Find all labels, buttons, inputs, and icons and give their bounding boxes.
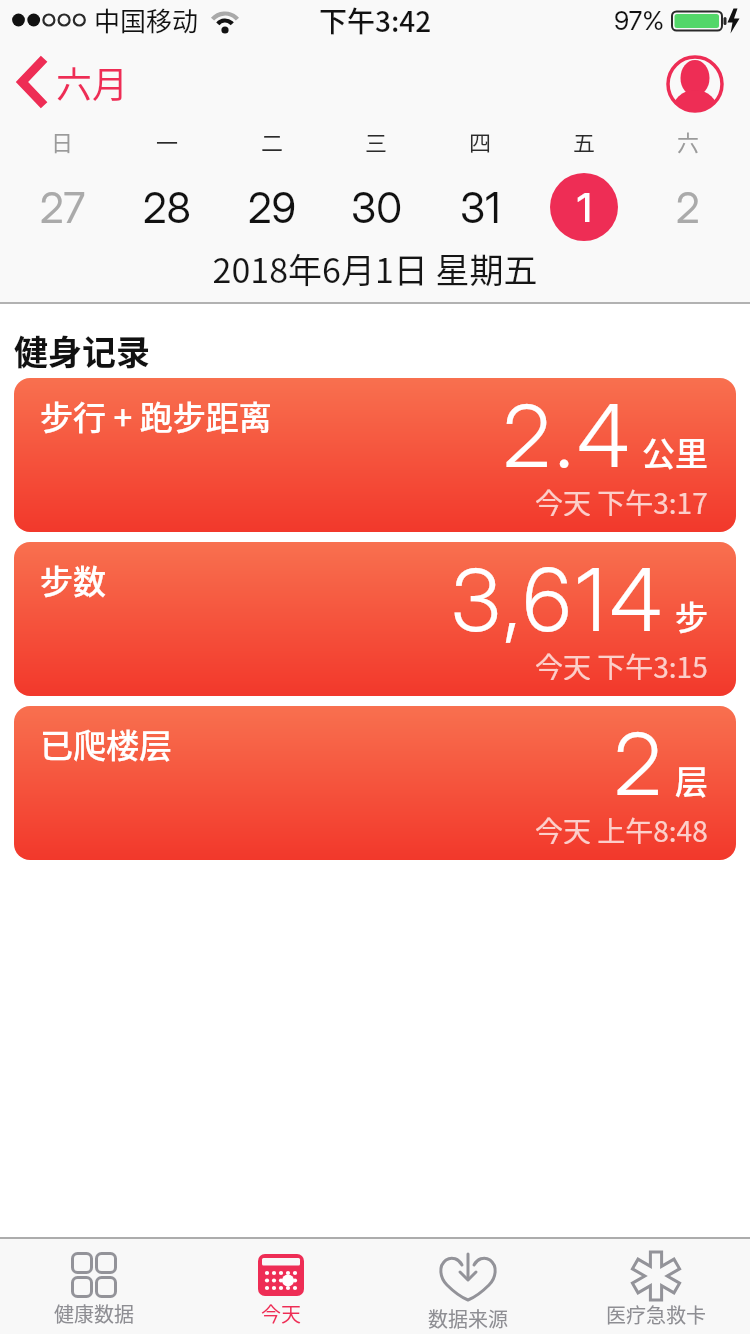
staticText: 3,614: [451, 548, 667, 652]
button[interactable]: 健康数据: [0, 1239, 187, 1334]
button[interactable]: 医疗急救卡: [562, 1239, 750, 1334]
button[interactable]: 28: [115, 172, 220, 242]
staticText: 今天 下午3:17: [535, 482, 708, 516]
button[interactable]: 1: [532, 172, 636, 242]
staticText: 六: [677, 125, 700, 157]
staticText: 已爬楼层: [40, 720, 172, 768]
button[interactable]: 31: [428, 172, 532, 242]
staticText: 日: [51, 125, 74, 157]
staticText: 数据来源: [428, 1304, 508, 1333]
staticText: 30: [351, 182, 402, 233]
staticText: 2: [614, 712, 667, 816]
button[interactable]: 已爬楼层: [14, 706, 736, 860]
staticText: 三: [365, 125, 388, 157]
button[interactable]: 六月: [18, 56, 129, 108]
staticText: 31: [460, 182, 501, 233]
staticText: 二: [261, 125, 284, 157]
button[interactable]: 数据来源: [374, 1239, 562, 1334]
button[interactable]: 29: [220, 172, 324, 242]
staticText: 层: [675, 756, 708, 804]
staticText: 六月: [56, 56, 129, 108]
staticText: 今天: [261, 1299, 301, 1328]
staticText: 四: [469, 125, 492, 157]
staticText: 2: [676, 182, 700, 233]
staticText: 中国移动: [94, 1, 199, 39]
button[interactable]: 步数: [14, 542, 736, 696]
staticText: 今天 上午8:48: [535, 810, 708, 844]
staticText: 2018年6月1日 星期五: [0, 244, 750, 293]
staticText: 医疗急救卡: [606, 1300, 706, 1329]
button[interactable]: 2: [636, 172, 740, 242]
staticText: 步: [675, 592, 708, 640]
staticText: 今天 下午3:15: [535, 646, 708, 680]
staticText: 公里: [642, 428, 708, 476]
staticText: 97%: [614, 5, 665, 36]
staticText: 28: [143, 182, 192, 233]
button[interactable]: 今天: [187, 1239, 374, 1334]
staticText: 五: [573, 125, 596, 157]
staticText: 健康数据: [54, 1299, 134, 1328]
staticText: 步行 + 跑步距离: [40, 392, 272, 440]
button[interactable]: 27: [10, 172, 115, 242]
staticText: 一: [156, 125, 179, 157]
staticText: 下午3:42: [319, 0, 432, 40]
staticText: 29: [248, 182, 297, 233]
staticText: 健身记录: [14, 326, 150, 375]
button[interactable]: [666, 55, 724, 113]
button[interactable]: 步行 + 跑步距离: [14, 378, 736, 532]
button[interactable]: 30: [324, 172, 428, 242]
staticText: 步数: [40, 556, 106, 604]
staticText: 1: [577, 183, 592, 231]
staticText: 27: [40, 182, 86, 233]
staticText: 2.4: [503, 384, 634, 488]
